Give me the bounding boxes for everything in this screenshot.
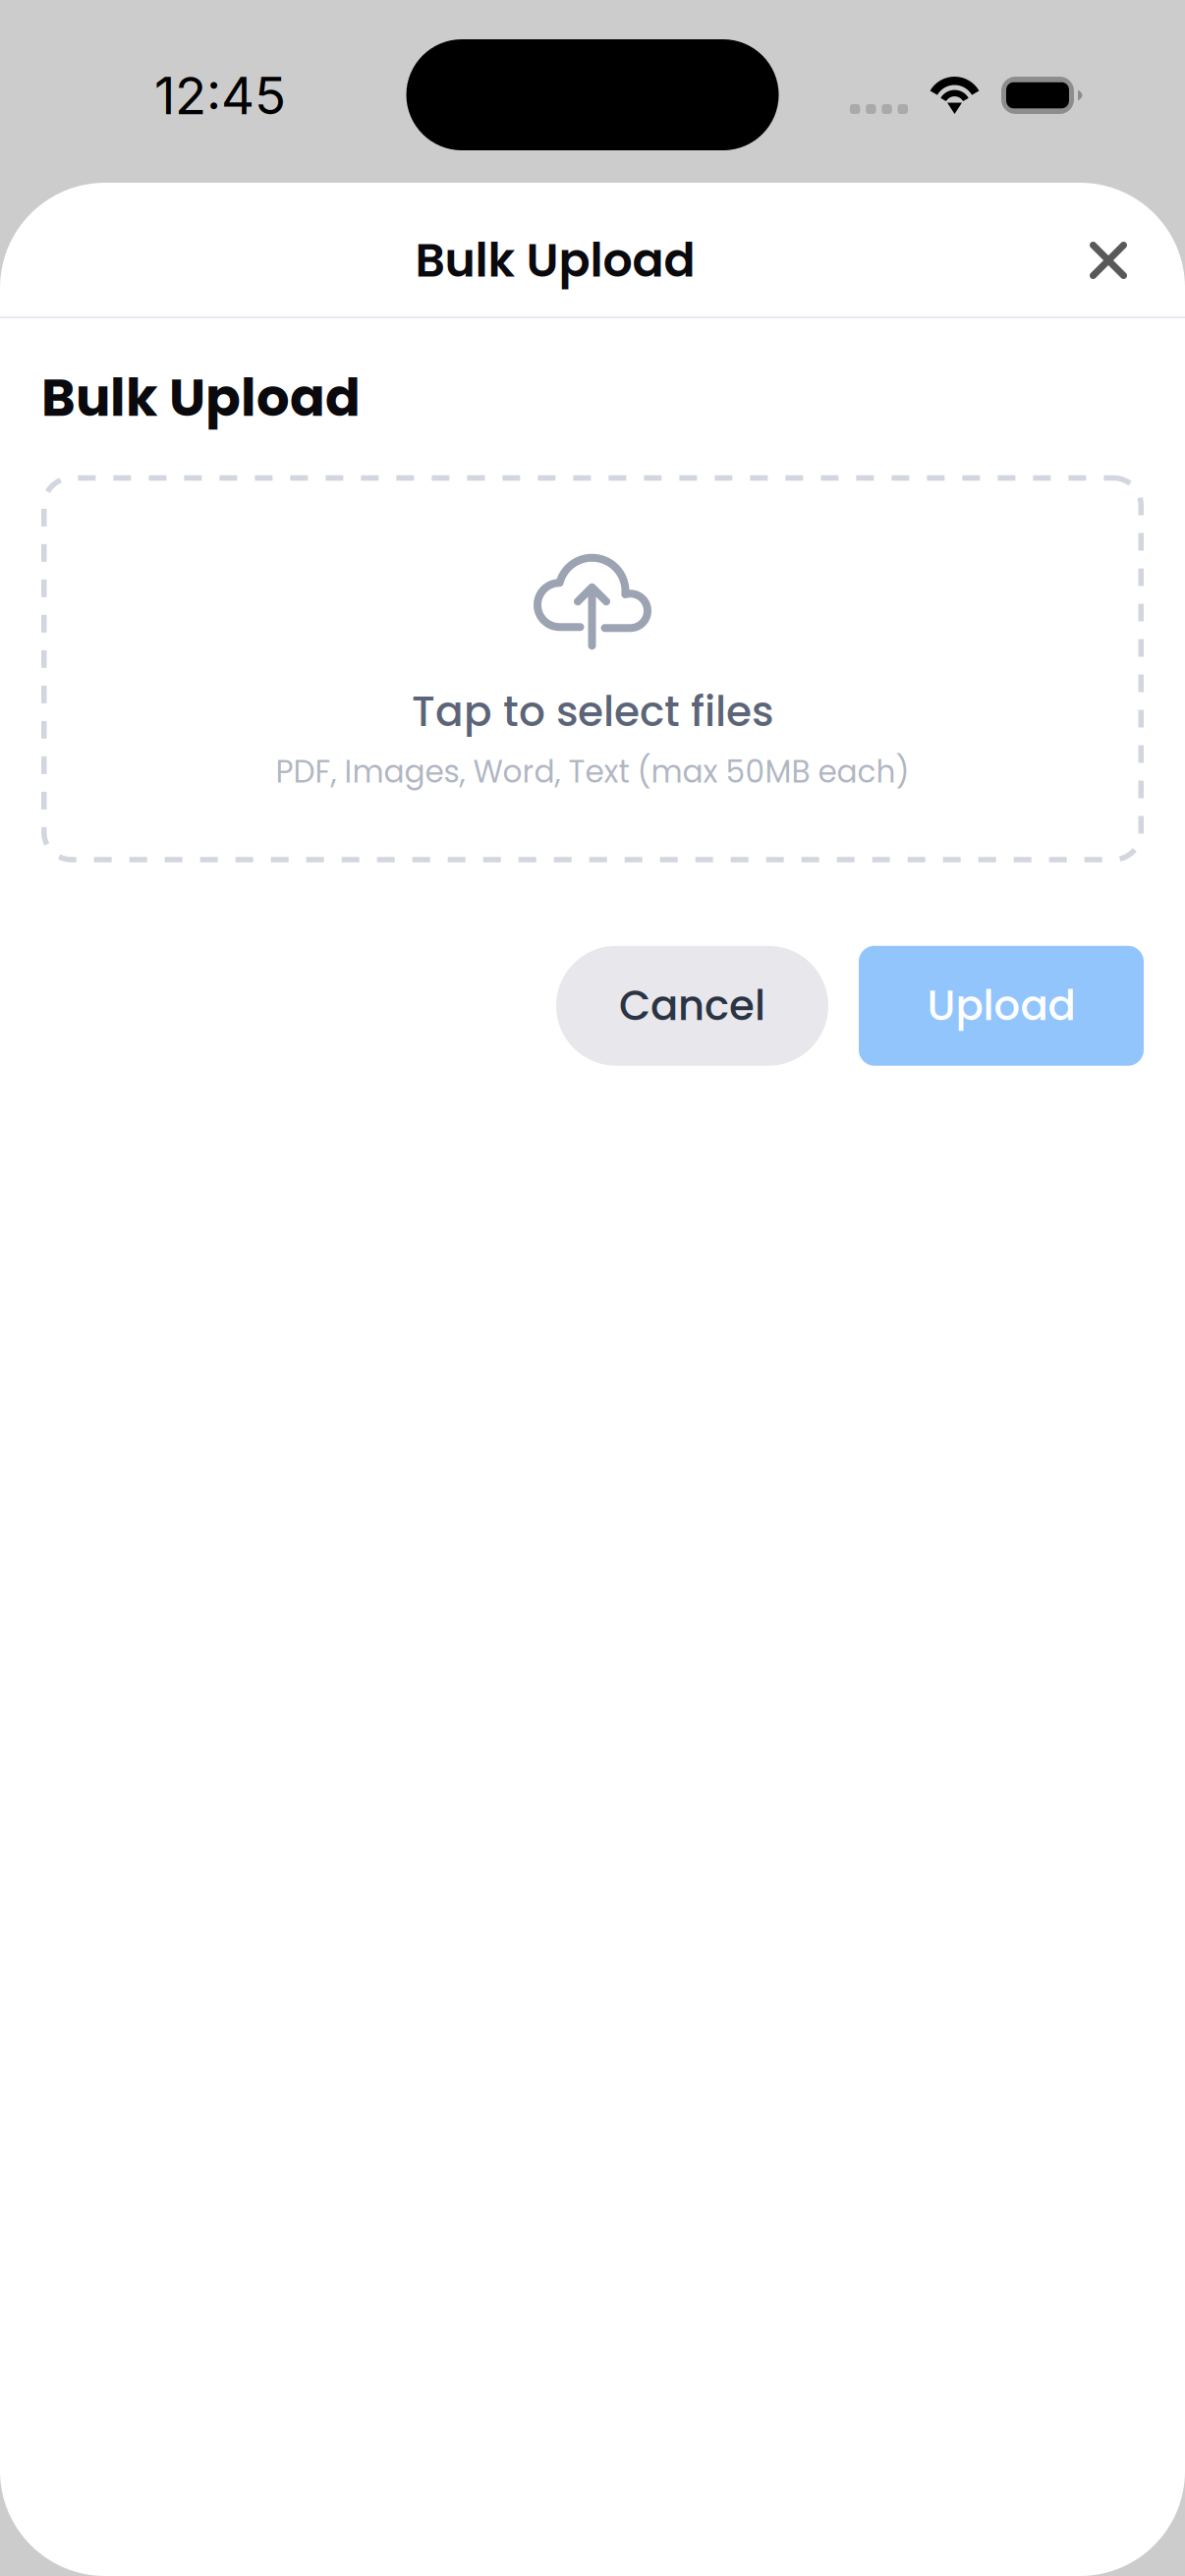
- staticText: Bulk Upload: [415, 228, 695, 293]
- button[interactable]: Upload: [859, 946, 1144, 1066]
- staticText: Tap to select files: [412, 683, 773, 740]
- staticText: Cancel: [619, 977, 765, 1034]
- staticText: 12:45: [154, 64, 286, 127]
- button[interactable]: Tap to select files: [41, 475, 1144, 862]
- staticText: PDF, Images, Word, Text (max 50MB each): [276, 750, 909, 793]
- button[interactable]: Cancel: [556, 946, 828, 1066]
- staticText: Bulk Upload: [41, 362, 361, 434]
- staticText: Upload: [927, 977, 1075, 1034]
- button[interactable]: Close: [1059, 211, 1157, 309]
